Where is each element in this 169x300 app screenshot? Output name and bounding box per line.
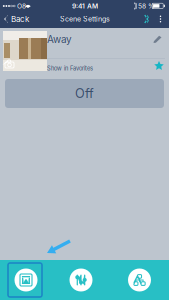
button[interactable]: Show in Favorites: [154, 60, 164, 70]
staticText: 58 %: [138, 2, 155, 10]
button[interactable]: Bluetooth: [141, 13, 152, 25]
staticText: Away: [47, 33, 72, 45]
staticText: Back: [11, 14, 29, 24]
staticText: Off: [75, 86, 94, 101]
button[interactable]: Scenes: [0, 260, 52, 300]
button[interactable]: Back: [11, 14, 37, 24]
staticText: Show in Favorites: [47, 65, 93, 72]
button[interactable]: Devices: [110, 260, 169, 300]
button[interactable]: Away: [47, 28, 169, 58]
button[interactable]: Rename scene: [153, 35, 161, 43]
button[interactable]: Show in Favorites: [47, 59, 169, 77]
staticText: O8: [17, 2, 26, 10]
button[interactable]: Back: [4, 15, 8, 22]
button[interactable]: Off: [5, 79, 164, 108]
button[interactable]: More options: [155, 13, 166, 25]
button[interactable]: Controls: [52, 260, 110, 300]
staticText: 9:41 AM: [72, 2, 98, 10]
staticText: Scene Settings: [60, 15, 110, 23]
